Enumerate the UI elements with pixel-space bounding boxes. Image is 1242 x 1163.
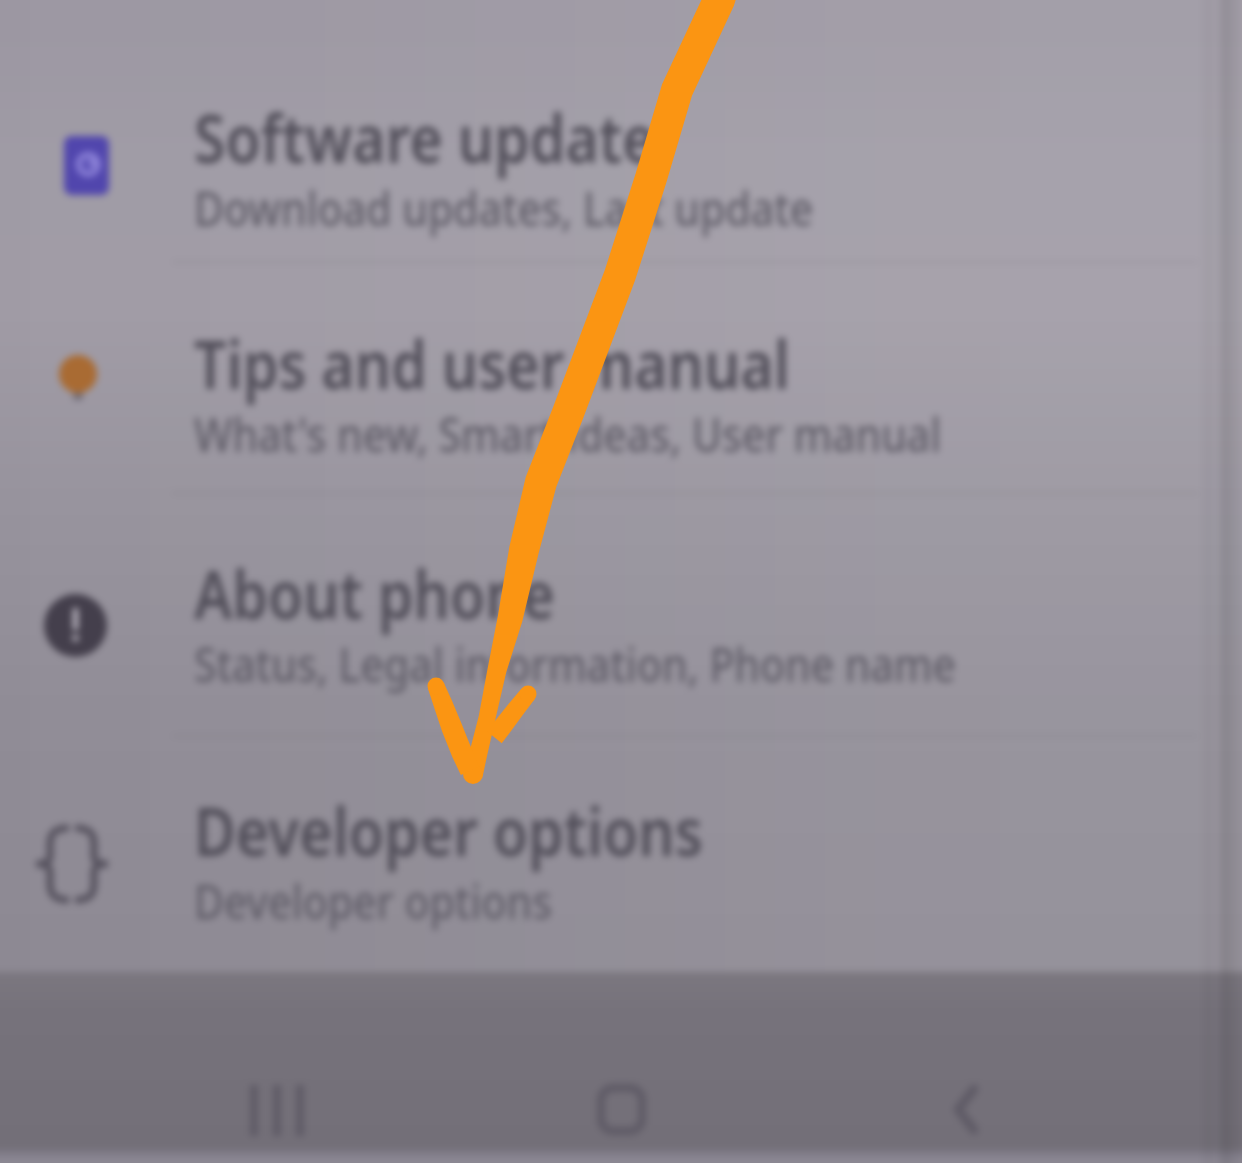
button[interactable] xyxy=(0,747,1242,975)
staticText: Download updates, Last update xyxy=(194,176,813,239)
staticText: What's new, Smart ideas, User manual xyxy=(194,402,942,465)
staticText: Developer options xyxy=(194,869,552,932)
staticText: About phone xyxy=(194,548,556,638)
button[interactable] xyxy=(0,510,1242,738)
staticText: Status, Legal information, Phone name xyxy=(194,632,957,695)
button[interactable] xyxy=(0,280,1242,508)
staticText: Developer options xyxy=(194,785,703,875)
staticText: Software update xyxy=(194,92,656,182)
button[interactable] xyxy=(0,54,1242,282)
staticText: Tips and user manual xyxy=(194,318,790,408)
